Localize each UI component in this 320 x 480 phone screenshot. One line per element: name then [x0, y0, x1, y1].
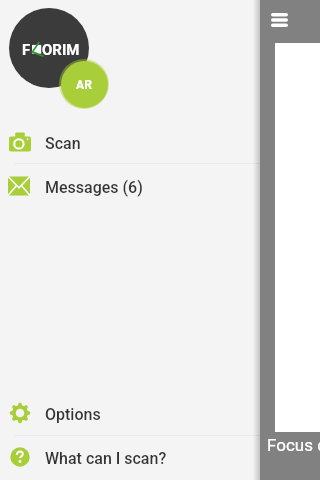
- button[interactable]: What can I scan?: [0, 435, 260, 479]
- button[interactable]: Scan: [0, 120, 260, 164]
- button[interactable]: Close navigation drawer: [260, 0, 320, 480]
- staticText: Scan: [45, 134, 81, 153]
- button[interactable]: Messages (6): [0, 164, 260, 208]
- staticText: Messages (6): [45, 178, 143, 197]
- staticText: What can I scan?: [45, 449, 167, 468]
- staticText: Options: [45, 405, 101, 424]
- staticText: AR: [76, 78, 93, 92]
- staticText: ORIM: [42, 41, 80, 59]
- staticText: Focus on: [267, 435, 320, 455]
- button[interactable]: Options: [0, 391, 260, 435]
- button[interactable]: Open navigation menu: [263, 4, 295, 36]
- staticText: F: [22, 41, 31, 59]
